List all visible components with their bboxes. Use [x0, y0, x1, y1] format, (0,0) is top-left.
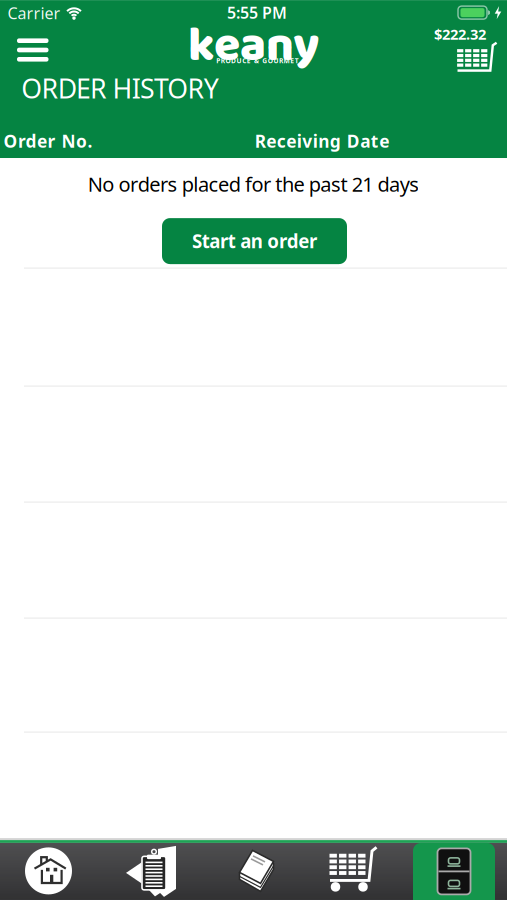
staticText: Carrier — [7, 2, 60, 24]
staticText: keany — [188, 8, 319, 85]
staticText: Start an order — [192, 229, 317, 253]
button[interactable]: Start an order — [162, 218, 347, 264]
button[interactable]: Home — [2, 842, 94, 899]
button[interactable]: Order History — [408, 843, 500, 900]
staticText: $222.32 — [434, 24, 486, 44]
staticText: ORDER HISTORY — [21, 70, 219, 106]
button[interactable]: Order Guide — [105, 843, 197, 900]
staticText: Receiving Date — [255, 130, 389, 153]
staticText: 5:55 PM — [227, 2, 287, 23]
staticText: Order No. — [3, 130, 92, 153]
button[interactable]: Menu — [17, 38, 49, 62]
button[interactable]: Catalog — [207, 843, 299, 900]
staticText: No orders placed for the past 21 days — [88, 171, 419, 197]
staticText: PRODUCE & GOURMET — [216, 56, 299, 65]
button[interactable]: Cart — [306, 841, 398, 898]
button[interactable]: Cart — [426, 22, 502, 78]
